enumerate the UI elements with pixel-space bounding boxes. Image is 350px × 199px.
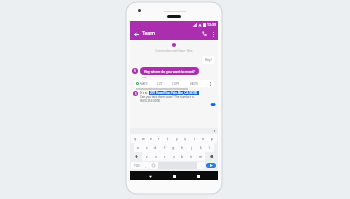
staticText: p [211,136,214,141]
button[interactable]: Send [206,163,216,168]
button[interactable]: z [142,152,151,161]
staticText: i [194,136,195,141]
staticText: z [146,154,148,159]
button[interactable]: COPY [172,82,180,86]
button[interactable]: g [169,143,178,152]
staticText: h [181,145,184,150]
staticText: Hey where do you want to meet? [144,69,195,73]
button[interactable]: a [134,143,142,152]
staticText: t [167,136,169,141]
button[interactable]: t [163,134,172,143]
staticText: k [200,145,202,150]
button[interactable]: More [208,81,213,86]
staticText: v [173,154,175,159]
staticText: r [158,136,160,141]
button[interactable]: MAPS [140,82,148,86]
button[interactable]: Call [200,29,209,38]
button[interactable]: s [142,143,151,152]
staticText: y [176,136,178,141]
button[interactable]: Voice input [213,130,216,133]
button[interactable]: d [151,143,160,152]
button[interactable]: CUT [157,82,163,86]
button[interactable]: Shift [131,152,142,161]
staticText: It's at [140,91,148,95]
button[interactable]: n [187,152,196,161]
button[interactable]: PASTE [190,82,198,86]
staticText: Can you text them soon? The number is [140,95,194,99]
staticText: w [142,136,145,141]
button[interactable]: x [151,152,160,161]
staticText: 201 Powell San Palo Alto, CA 94105 [150,91,198,95]
staticText: ?123 [134,164,140,168]
staticText: , [145,164,146,168]
button[interactable]: i [190,134,199,143]
button[interactable]: u [181,134,190,143]
staticText: b [181,154,184,159]
staticText: Hey! [205,58,212,62]
button[interactable]: Back [146,172,154,180]
button[interactable]: Home [170,172,178,180]
button[interactable]: c [160,152,169,161]
staticText: 12:30 [207,22,216,27]
button[interactable]: v [169,152,178,161]
staticText: s [146,145,148,150]
staticText: f [164,145,166,150]
staticText: x [155,154,157,159]
staticText: n [190,154,193,159]
button[interactable]: , [142,162,149,169]
staticText: Mon [142,76,147,79]
button[interactable]: Recents [194,172,202,180]
button[interactable]: l [205,143,214,152]
staticText: u [184,136,187,141]
button[interactable]: w [139,134,147,143]
button[interactable]: y [172,134,181,143]
button[interactable]: e [147,134,155,143]
staticText: S [134,69,136,73]
button[interactable]: More options [209,30,217,38]
staticText: e [150,136,152,141]
button[interactable]: p [208,134,217,143]
staticText: S [135,92,137,96]
button[interactable]: Backspace [205,152,217,161]
staticText: c [164,154,166,159]
button[interactable]: ?123 [131,162,142,169]
staticText: m [199,154,203,159]
staticText: q [134,136,137,141]
button[interactable]: Hey where do you want to meet? [140,67,199,75]
staticText: g [172,145,175,150]
staticText: d [154,145,157,150]
button[interactable]: Hey! [202,56,215,64]
button[interactable]: m [196,152,205,161]
button[interactable]: k [196,143,205,152]
button[interactable]: Emoji [149,162,158,169]
button[interactable]: Back [132,30,140,38]
staticText: . [201,164,202,168]
staticText: Conversation with Steve · Mon [130,49,218,53]
button[interactable]: r [155,134,163,143]
button[interactable]: 201 Powell San Palo Alto, CA 94105 [149,91,199,95]
staticText: (650) 253-0000 [140,99,160,103]
staticText: a [137,145,139,150]
staticText: l [209,145,210,150]
button[interactable]: q [131,134,139,143]
staticText: Team [142,30,155,37]
button[interactable]: o [199,134,208,143]
button[interactable]: j [187,143,196,152]
button[interactable]: b [178,152,187,161]
staticText: j [191,145,192,150]
staticText: o [202,136,205,141]
button[interactable]: h [178,143,187,152]
button[interactable]: f [160,143,169,152]
